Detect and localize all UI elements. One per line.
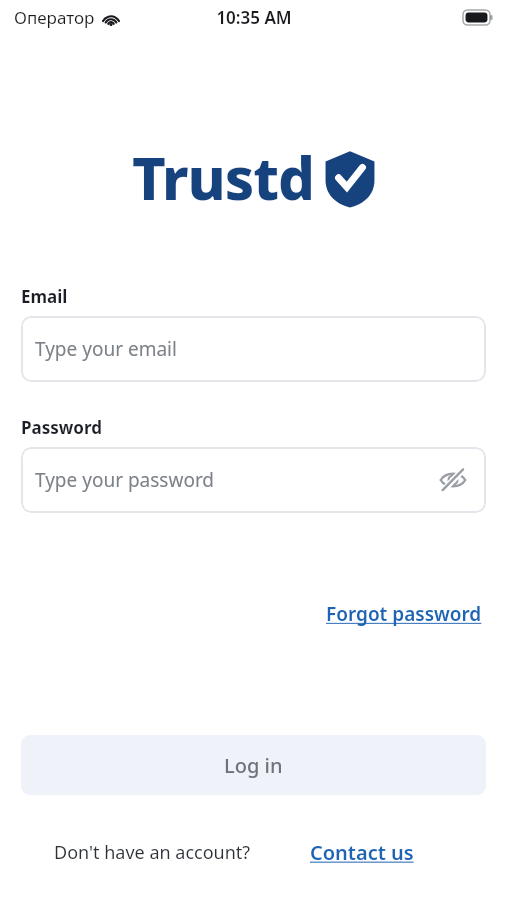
staticText: Type your password bbox=[35, 467, 215, 493]
button[interactable]: Type your password bbox=[21, 447, 486, 513]
staticText: Don't have an account? bbox=[54, 840, 251, 865]
staticText: Type your email bbox=[35, 336, 177, 362]
staticText: Log in bbox=[224, 752, 283, 779]
button[interactable]: Contact us bbox=[305, 836, 419, 869]
button[interactable]: Log in bbox=[21, 735, 486, 795]
staticText: Trustd bbox=[132, 138, 315, 217]
staticText: Password bbox=[21, 416, 102, 439]
staticText: 10:35 AM bbox=[216, 6, 292, 29]
staticText: Оператор bbox=[14, 6, 95, 29]
staticText: Forgot password bbox=[326, 601, 482, 627]
button[interactable]: Type your email bbox=[21, 316, 486, 382]
button[interactable]: Forgot password bbox=[322, 598, 486, 630]
staticText: Contact us bbox=[310, 839, 414, 866]
staticText: Email bbox=[21, 285, 68, 308]
button[interactable]: Show password bbox=[436, 463, 470, 497]
